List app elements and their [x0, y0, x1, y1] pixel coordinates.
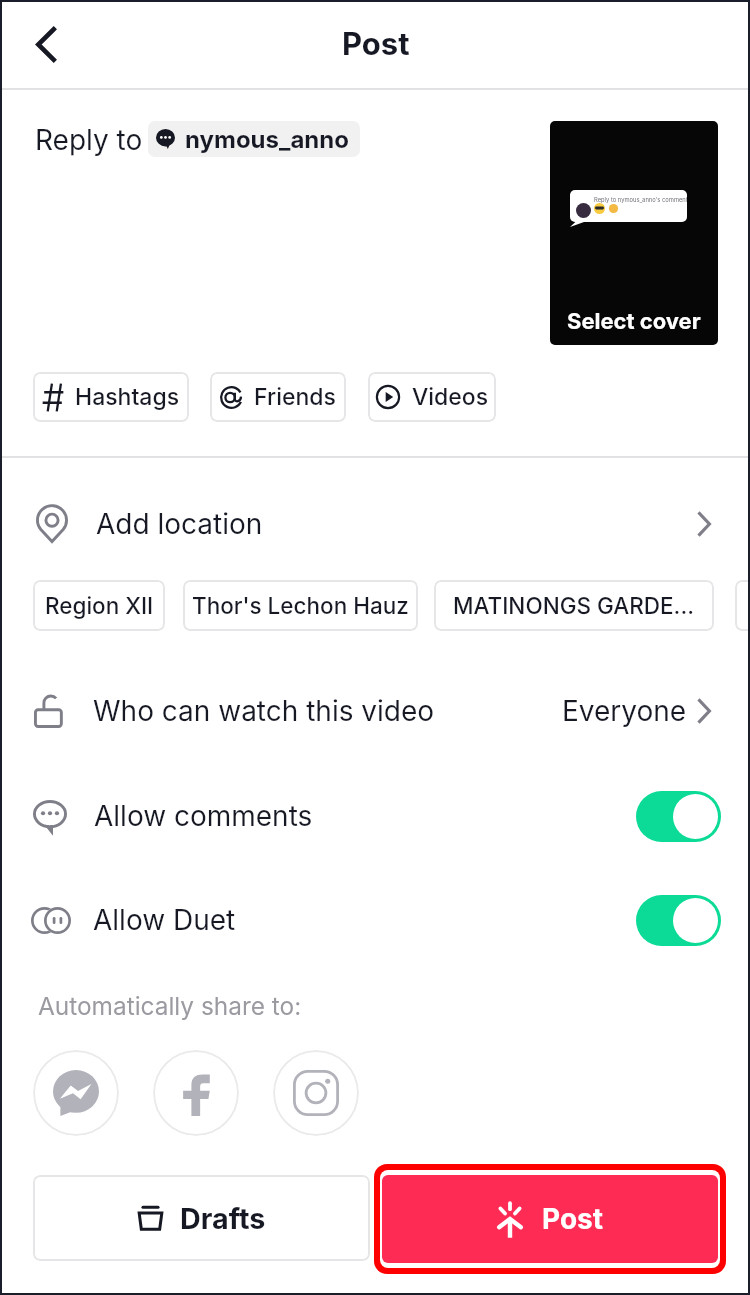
button[interactable]: Thor's Lechon Hauz	[183, 580, 418, 631]
staticText: MATINONGS GARDE...	[453, 592, 695, 619]
button[interactable]: D	[735, 580, 750, 631]
staticText: Automatically share to:	[38, 991, 302, 1021]
button[interactable]: nymous_anno	[148, 121, 360, 157]
staticText: nymous_anno	[185, 125, 349, 154]
button[interactable]: Drafts	[33, 1175, 370, 1261]
staticText: Add location	[96, 507, 263, 541]
staticText: Select cover	[567, 308, 701, 335]
staticText: Reply to nymous_anno's comment	[594, 196, 687, 203]
button[interactable]: Post	[382, 1175, 718, 1263]
button[interactable]: Instagram	[273, 1050, 359, 1136]
button[interactable]: Select cover	[550, 121, 718, 345]
staticText: Reply to	[35, 123, 143, 157]
button[interactable]: Messenger	[33, 1050, 119, 1136]
button[interactable]: Back	[16, 14, 76, 74]
button[interactable]: Toggle	[636, 895, 721, 946]
staticText: Post	[342, 25, 410, 63]
button[interactable]: Hashtags	[33, 372, 189, 422]
staticText: Hashtags	[75, 383, 180, 411]
staticText: Who can watch this video	[93, 694, 435, 728]
staticText: Allow Duet	[93, 903, 236, 937]
button[interactable]: Add location	[0, 488, 750, 560]
button[interactable]: Videos	[368, 372, 496, 422]
button[interactable]: Toggle	[636, 791, 721, 842]
button[interactable]: MATINONGS GARDE...	[434, 580, 714, 631]
staticText: Region XII	[45, 592, 154, 619]
button[interactable]: Who can watch this video	[0, 675, 750, 747]
staticText: Drafts	[180, 1201, 266, 1236]
staticText: Everyone	[562, 694, 687, 728]
button[interactable]: Allow Duet	[0, 884, 750, 956]
staticText: Videos	[412, 383, 489, 411]
button[interactable]: Allow comments	[0, 780, 750, 852]
button[interactable]: Friends	[210, 372, 346, 422]
button[interactable]: Facebook	[153, 1050, 239, 1136]
staticText: Friends	[254, 383, 336, 411]
staticText: Post	[542, 1202, 604, 1236]
staticText: Thor's Lechon Hauz	[192, 592, 409, 619]
staticText: Allow comments	[94, 799, 313, 833]
button[interactable]: Region XII	[33, 580, 165, 631]
